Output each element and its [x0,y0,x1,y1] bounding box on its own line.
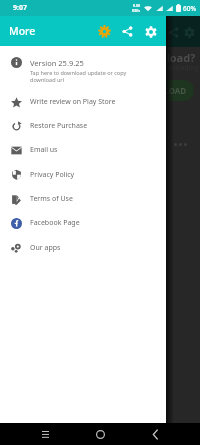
staticText: 9:07 [13,3,27,13]
staticText: Restore Purchase [30,121,88,131]
button[interactable]: Terms of Use [0,187,166,211]
button[interactable]: Home [90,424,110,444]
staticText: DOWNLOAD [138,85,187,96]
button[interactable]: Settings [139,20,162,43]
staticText: Our apps [30,243,61,253]
staticText: Do you want to download? [50,50,196,64]
staticText: 60% [183,4,196,13]
button[interactable]: Version 25.9.25 [0,46,166,90]
staticText: 0.00 [133,3,141,8]
button[interactable]: Restore Purchase [0,114,166,138]
button[interactable]: Facebook Page [0,211,166,235]
staticText: Tap here to download update or copy down… [30,69,127,83]
staticText: More [9,24,36,38]
staticText: Privacy Policy [30,170,75,180]
button[interactable]: Privacy Policy [0,162,166,187]
staticText: KB/s [132,8,141,13]
staticText: Version 25.9.25 [30,58,84,68]
button[interactable]: Email us [0,138,166,162]
button[interactable]: Back [145,424,165,444]
staticText: Terms of Use [30,194,73,204]
button[interactable]: Write review on Play Store [0,90,166,114]
staticText: Email us [30,145,58,155]
button[interactable]: Premium [93,20,116,43]
button[interactable]: Share [116,20,139,43]
button[interactable]: Our apps [0,235,166,260]
staticText: Facebook Page [30,218,80,228]
button[interactable]: Recents [35,424,55,444]
staticText: Write review on Play Store [30,97,116,107]
staticText: Tap download button to start downloading [68,63,199,72]
